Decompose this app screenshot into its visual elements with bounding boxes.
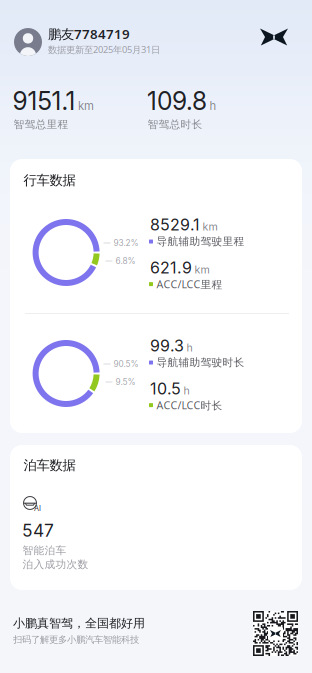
staticText: 9.5% — [115, 377, 135, 387]
staticText: 扫码了解更多小鹏汽车智能科技 — [13, 634, 139, 645]
staticText: AI — [34, 504, 41, 513]
staticText: 10.5 — [150, 379, 181, 398]
button[interactable]: 鹏友7784719 — [48, 25, 160, 56]
staticText: 109.8 — [147, 86, 207, 116]
staticText: 621.9 — [150, 258, 192, 277]
staticText: h — [209, 99, 216, 113]
staticText: 智能泊车 — [22, 544, 66, 557]
staticText: 6.8% — [115, 256, 135, 266]
staticText: 小鹏真智驾，全国都好用 — [13, 616, 145, 631]
staticText: 智驾总时长 — [147, 118, 202, 131]
staticText: 数据更新至2025年05月31日 — [48, 43, 160, 56]
staticText: km — [194, 263, 209, 276]
staticText: ACC/LCC里程 — [156, 277, 222, 291]
staticText: h — [183, 384, 189, 397]
button[interactable]: XPeng — [254, 21, 294, 53]
staticText: h — [186, 341, 192, 354]
staticText: 8529.1 — [150, 215, 200, 234]
staticText: 导航辅助驾驶里程 — [156, 235, 244, 248]
staticText: 鹏友7784719 — [48, 25, 130, 43]
staticText: 行车数据 — [23, 172, 75, 188]
staticText: 93.2% — [113, 238, 138, 248]
staticText: 99.3 — [150, 336, 184, 355]
staticText: 智驾总里程 — [13, 118, 68, 131]
staticText: km — [202, 220, 217, 233]
staticText: 90.5% — [113, 359, 138, 369]
staticText: 547 — [22, 520, 54, 541]
staticText: 导航辅助驾驶时长 — [156, 356, 244, 369]
staticText: km — [78, 99, 94, 113]
staticText: 9151.1 — [12, 86, 75, 116]
staticText: 泊入成功次数 — [22, 558, 88, 571]
staticText: 泊车数据 — [23, 457, 75, 473]
staticText: ACC/LCC时长 — [156, 398, 222, 412]
